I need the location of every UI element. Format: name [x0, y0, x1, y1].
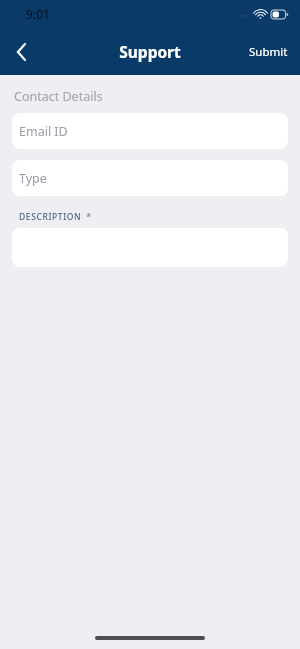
staticText: Submit: [249, 44, 288, 60]
staticText: Support: [119, 41, 181, 62]
staticText: Contact Details: [14, 88, 103, 105]
staticText: Email ID: [19, 123, 68, 140]
staticText: DESCRIPTION: [19, 211, 82, 223]
button[interactable]: Type: [12, 160, 288, 196]
staticText: Type: [19, 170, 47, 187]
staticText: 9:01: [26, 6, 50, 22]
button[interactable]: Back: [0, 31, 42, 73]
button[interactable]: Submit: [237, 36, 300, 68]
staticText: *: [86, 210, 92, 223]
button[interactable]: Email ID: [12, 113, 288, 149]
